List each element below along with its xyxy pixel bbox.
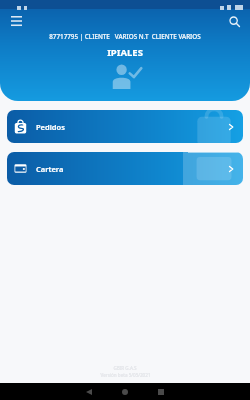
button[interactable]: Back bbox=[71, 383, 107, 400]
staticText: GBIR G.A.S bbox=[113, 365, 137, 371]
staticText: Cartera bbox=[36, 164, 64, 174]
staticText: Pedidos bbox=[36, 122, 65, 132]
button[interactable]: Home bbox=[107, 383, 143, 400]
button[interactable]: Recent apps bbox=[143, 383, 179, 400]
staticText: IPIALES bbox=[0, 46, 250, 59]
staticText: 87717795 | CLIENTE VARIOS N.T CLIENTE VA… bbox=[0, 32, 250, 41]
button[interactable]: Search bbox=[223, 10, 245, 32]
staticText: Versión beta 5/05/2021 bbox=[100, 372, 151, 378]
button[interactable]: Open navigation menu bbox=[5, 10, 27, 32]
button[interactable]: Cartera bbox=[7, 152, 243, 185]
button[interactable]: Pedidos bbox=[7, 110, 243, 143]
